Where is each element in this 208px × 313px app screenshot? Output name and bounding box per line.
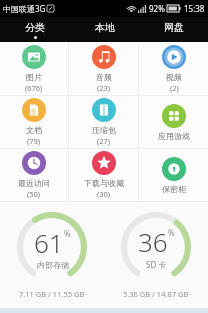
staticText: (2): [170, 83, 179, 93]
staticText: 最近访问: [18, 178, 50, 188]
button[interactable]: 最近访问: [0, 149, 68, 201]
button[interactable]: 文档: [0, 96, 68, 148]
staticText: SD 卡: [146, 259, 167, 270]
staticText: (23): [97, 83, 111, 93]
staticText: (27): [97, 136, 111, 146]
staticText: 5.36 GB / 14.87 GB: [123, 289, 189, 299]
button[interactable]: 压缩包: [69, 96, 138, 148]
staticText: 中国联通3G: [3, 3, 46, 14]
staticText: 36: [138, 224, 168, 259]
staticText: 下载与收藏: [84, 178, 124, 188]
staticText: 92%: [149, 3, 165, 14]
button[interactable]: 下载与收藏: [69, 149, 138, 201]
staticText: 应用游戏: [158, 131, 190, 141]
staticText: 分类: [25, 21, 45, 34]
staticText: 61: [34, 225, 64, 260]
staticText: 15:38: [184, 3, 205, 14]
staticText: (30): [97, 189, 111, 199]
button[interactable]: 音频: [69, 42, 138, 95]
button[interactable]: 61: [0, 202, 104, 308]
staticText: 文档: [26, 125, 42, 135]
staticText: (79): [27, 136, 41, 146]
staticText: (50): [27, 189, 41, 199]
button[interactable]: 视频: [139, 42, 208, 95]
button[interactable]: 保密柜: [139, 149, 208, 201]
staticText: 压缩包: [92, 125, 116, 135]
staticText: 保密柜: [162, 184, 186, 194]
staticText: 音频: [96, 72, 112, 82]
button[interactable]: 36: [104, 202, 208, 308]
staticText: 网盘: [164, 21, 184, 34]
staticText: 内部存储: [37, 260, 69, 270]
button[interactable]: 应用游戏: [139, 96, 208, 148]
staticText: 视频: [166, 72, 182, 82]
staticText: 本地: [95, 21, 115, 34]
staticText: 图片: [26, 72, 42, 82]
staticText: %: [64, 228, 71, 239]
button[interactable]: 网盘: [139, 17, 208, 42]
button[interactable]: 图片: [0, 42, 68, 95]
staticText: 7.11 GB / 11.55 GB: [19, 289, 85, 299]
button[interactable]: 本地: [70, 17, 139, 42]
staticText: %: [168, 227, 175, 238]
button[interactable]: 分类: [0, 17, 70, 42]
staticText: (676): [25, 83, 43, 93]
